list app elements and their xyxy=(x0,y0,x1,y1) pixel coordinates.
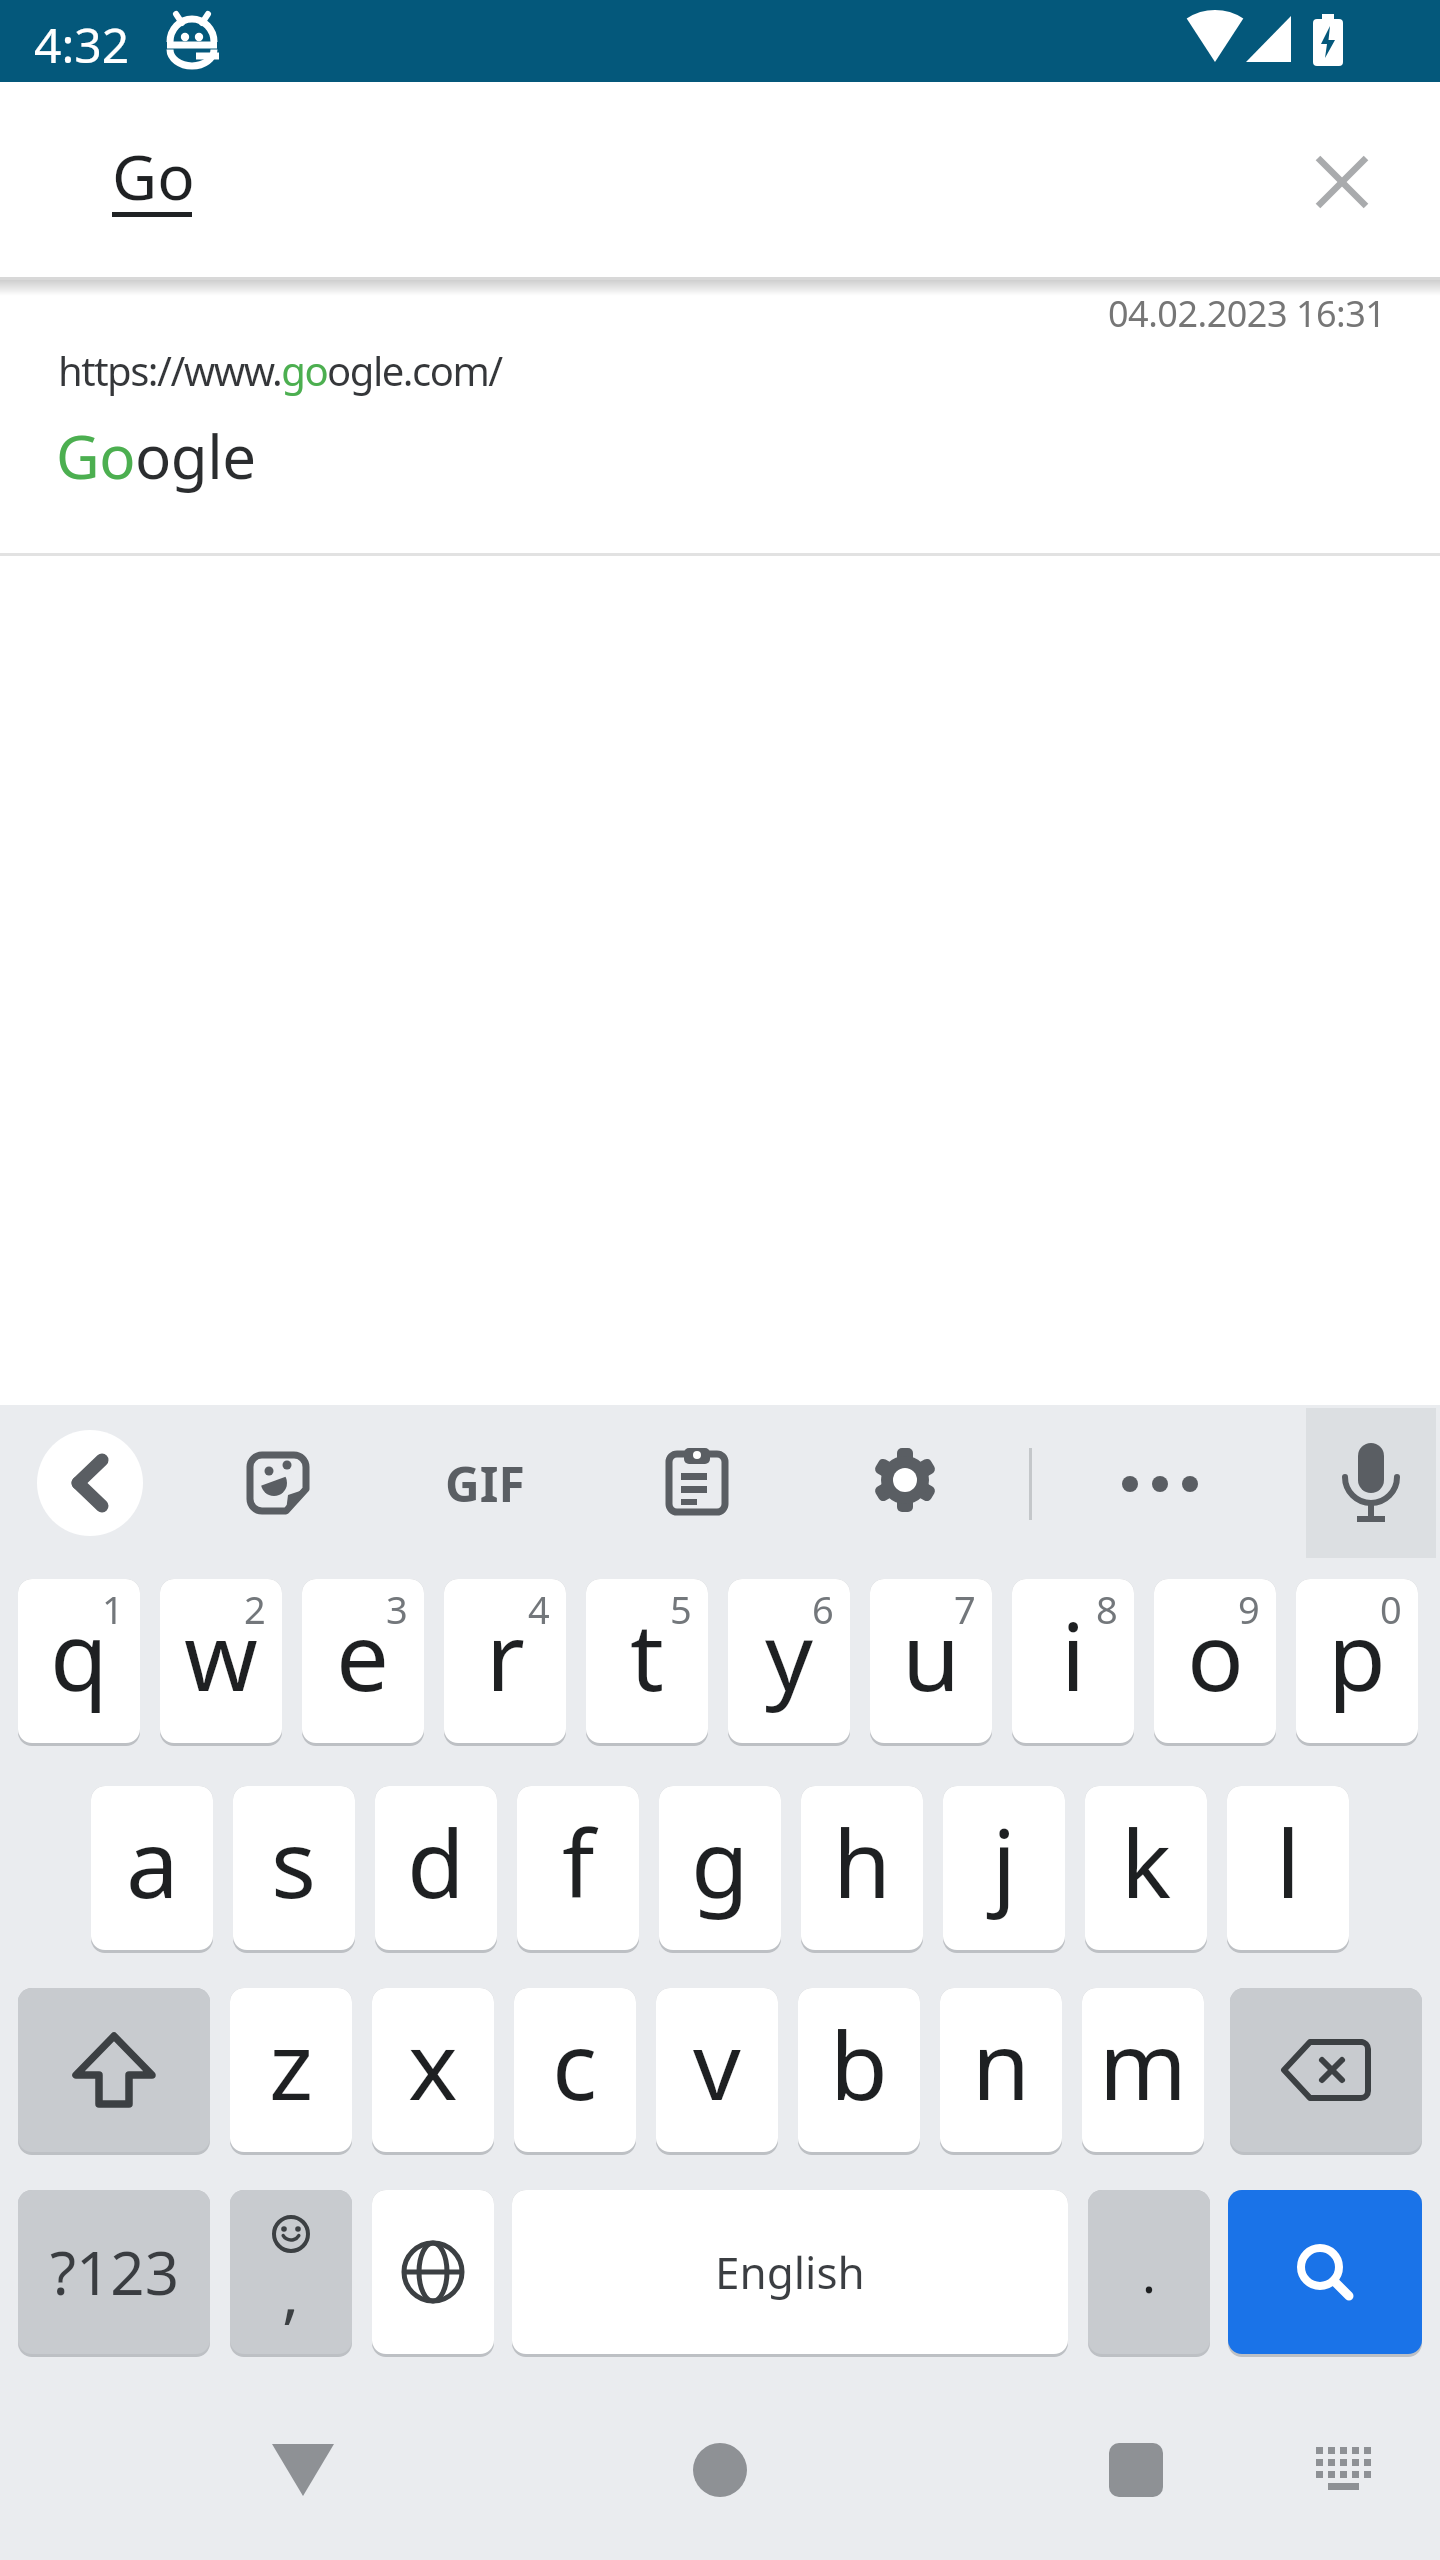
button[interactable]: e xyxy=(302,1579,424,1743)
button[interactable]: t xyxy=(586,1579,708,1743)
button[interactable]: y xyxy=(728,1579,850,1743)
button[interactable]: . xyxy=(1088,2190,1210,2354)
button[interactable]: o xyxy=(1154,1579,1276,1743)
staticText: d xyxy=(407,1798,465,1926)
staticText: English xyxy=(715,2242,865,2302)
button[interactable] xyxy=(1228,2190,1422,2354)
staticText: k xyxy=(1121,1798,1172,1926)
button[interactable]: h xyxy=(801,1786,923,1950)
staticText: 7 xyxy=(954,1583,976,1635)
button[interactable]: l xyxy=(1227,1786,1349,1950)
staticText: 4 xyxy=(528,1583,550,1635)
button[interactable]: z xyxy=(230,1988,352,2152)
button[interactable]: q xyxy=(18,1579,140,1743)
button[interactable]: f xyxy=(517,1786,639,1950)
staticText: w xyxy=(184,1591,258,1719)
button[interactable]: w xyxy=(160,1579,282,1743)
staticText: Google xyxy=(56,415,256,497)
button[interactable]: i xyxy=(1012,1579,1134,1743)
staticText: j xyxy=(992,1798,1017,1926)
button[interactable] xyxy=(1230,1988,1422,2152)
staticText: o xyxy=(1187,1591,1244,1719)
staticText: s xyxy=(271,1798,317,1926)
button[interactable] xyxy=(1081,2415,1191,2525)
button[interactable]: m xyxy=(1082,1988,1204,2152)
button[interactable]: k xyxy=(1085,1786,1207,1950)
staticText: 9 xyxy=(1238,1583,1260,1635)
staticText: q xyxy=(50,1591,108,1719)
staticText: . xyxy=(1142,2237,1156,2308)
staticText: 3 xyxy=(386,1583,408,1635)
staticText: m xyxy=(1099,2000,1187,2128)
button[interactable]: x xyxy=(372,1988,494,2152)
staticText: c xyxy=(552,2000,598,2128)
staticText: r xyxy=(486,1591,525,1719)
staticText: x xyxy=(408,2000,458,2128)
button[interactable]: c xyxy=(514,1988,636,2152)
staticText: u xyxy=(902,1591,961,1719)
button[interactable]: d xyxy=(375,1786,497,1950)
button[interactable] xyxy=(243,1448,313,1518)
button[interactable]: 04.02.2023 16:31 xyxy=(0,280,1440,553)
staticText: GIF xyxy=(445,1451,525,1516)
button[interactable]: v xyxy=(656,1988,778,2152)
staticText: 6 xyxy=(812,1583,834,1635)
button[interactable]: English xyxy=(512,2190,1068,2354)
button[interactable] xyxy=(18,1988,210,2152)
button[interactable] xyxy=(665,2415,775,2525)
button[interactable]: a xyxy=(91,1786,213,1950)
button[interactable]: s xyxy=(233,1786,355,1950)
staticText: f xyxy=(562,1798,595,1926)
button[interactable]: , xyxy=(230,2190,352,2354)
staticText: 8 xyxy=(1096,1583,1118,1635)
button[interactable]: j xyxy=(943,1786,1065,1950)
staticText: h xyxy=(833,1798,892,1926)
staticText: 5 xyxy=(670,1583,692,1635)
button[interactable] xyxy=(248,2415,358,2525)
button[interactable] xyxy=(662,1445,732,1515)
button[interactable] xyxy=(37,1430,143,1536)
staticText: e xyxy=(336,1591,390,1719)
button[interactable]: p xyxy=(1296,1579,1418,1743)
button[interactable]: GIF xyxy=(430,1445,540,1521)
button[interactable]: b xyxy=(798,1988,920,2152)
button[interactable] xyxy=(1110,1448,1210,1520)
staticText: 2 xyxy=(244,1583,266,1635)
staticText: p xyxy=(1328,1591,1386,1719)
staticText: https://www.google.com/ xyxy=(58,343,502,397)
button[interactable] xyxy=(1294,134,1390,230)
staticText: g xyxy=(691,1798,749,1926)
button[interactable]: g xyxy=(659,1786,781,1950)
staticText: l xyxy=(1276,1798,1301,1926)
staticText: y xyxy=(765,1591,813,1719)
button[interactable] xyxy=(870,1445,940,1515)
staticText: z xyxy=(269,2000,314,2128)
staticText: i xyxy=(1061,1591,1086,1719)
staticText: v xyxy=(693,2000,741,2128)
button[interactable]: u xyxy=(870,1579,992,1743)
staticText: 4:32 xyxy=(34,12,130,77)
button[interactable] xyxy=(372,2190,494,2354)
staticText: , xyxy=(282,2249,300,2336)
button[interactable] xyxy=(1295,2420,1395,2520)
staticText: 0 xyxy=(1380,1583,1402,1635)
staticText: 1 xyxy=(102,1583,124,1635)
button[interactable]: r xyxy=(444,1579,566,1743)
staticText: n xyxy=(972,2000,1031,2128)
button[interactable]: ?123 xyxy=(18,2190,210,2354)
staticText: t xyxy=(630,1591,664,1719)
staticText: Go xyxy=(112,134,195,218)
staticText: 04.02.2023 16:31 xyxy=(1108,289,1386,338)
staticText: a xyxy=(126,1798,179,1926)
staticText: ?123 xyxy=(50,2231,179,2313)
button[interactable]: n xyxy=(940,1988,1062,2152)
button[interactable] xyxy=(1306,1408,1436,1558)
staticText: b xyxy=(830,2000,888,2128)
